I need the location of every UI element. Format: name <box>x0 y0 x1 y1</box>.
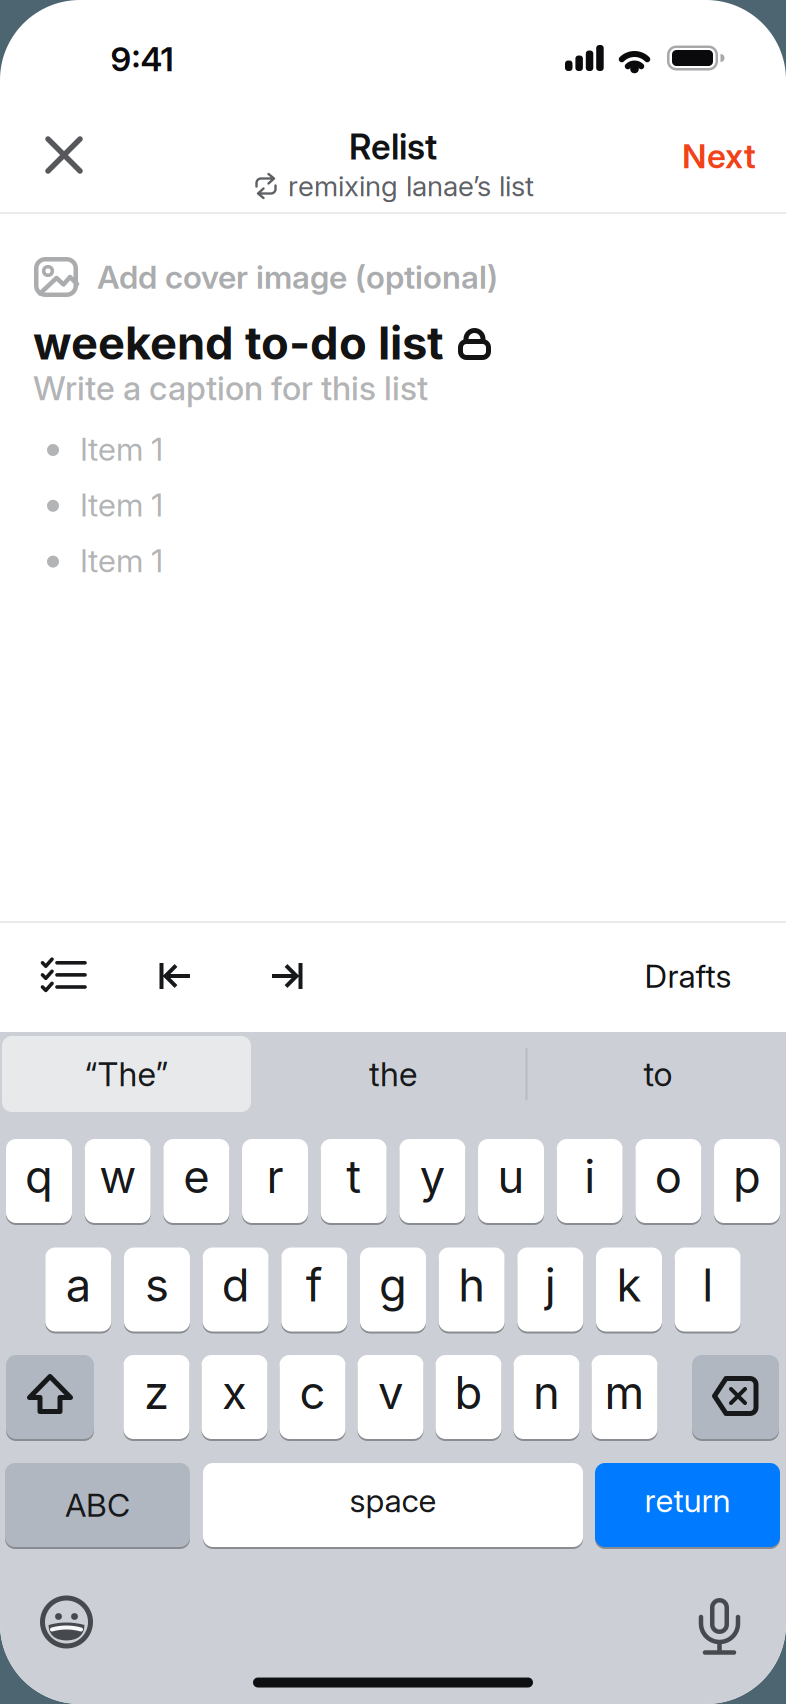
button[interactable]: b <box>435 1354 501 1440</box>
button[interactable]: z <box>123 1354 189 1440</box>
staticText: Item 1 <box>80 430 163 468</box>
staticText: x <box>222 1366 247 1419</box>
button[interactable]: s <box>124 1246 190 1332</box>
button[interactable]: “The” <box>2 1036 251 1112</box>
staticText: c <box>299 1366 325 1419</box>
button[interactable]: to <box>558 1036 758 1112</box>
staticText: the <box>369 1054 417 1094</box>
staticText: n <box>533 1366 560 1419</box>
button[interactable]: q <box>6 1138 72 1224</box>
button[interactable]: Drafts <box>644 957 731 995</box>
staticText: 9:41 <box>110 39 173 79</box>
button[interactable]: Shift <box>6 1354 94 1440</box>
button[interactable]: x <box>201 1354 267 1440</box>
staticText: p <box>733 1150 761 1203</box>
button[interactable]: Add cover image <box>34 257 498 297</box>
staticText: remixing lanae’s list <box>288 169 534 202</box>
button[interactable]: ABC <box>5 1462 190 1548</box>
staticText: Next <box>682 136 756 176</box>
button[interactable]: k <box>596 1246 662 1332</box>
button[interactable]: c <box>279 1354 345 1440</box>
staticText: Add cover image (optional) <box>97 258 498 296</box>
staticText: Write a caption for this list <box>33 368 428 408</box>
staticText: u <box>497 1150 524 1203</box>
button[interactable]: l <box>675 1246 741 1332</box>
staticText: f <box>306 1258 323 1312</box>
staticText: Item 1 <box>80 486 163 524</box>
button[interactable]: y <box>399 1138 465 1224</box>
staticText: h <box>458 1258 485 1312</box>
button[interactable]: space <box>203 1462 583 1548</box>
button[interactable]: Checklist <box>41 956 87 993</box>
button[interactable]: u <box>478 1138 544 1224</box>
button[interactable]: Emoji <box>39 1595 93 1649</box>
staticText: i <box>584 1150 595 1203</box>
staticText: “The” <box>84 1054 168 1094</box>
staticText: s <box>145 1258 169 1312</box>
staticText: to <box>643 1054 672 1094</box>
staticText: weekend to-do list <box>33 316 444 370</box>
button[interactable]: w <box>85 1138 151 1224</box>
button[interactable]: r <box>242 1138 308 1224</box>
button[interactable]: i <box>557 1138 623 1224</box>
staticText: Item 1 <box>80 542 163 579</box>
staticText: y <box>420 1150 445 1203</box>
button[interactable]: d <box>203 1246 269 1332</box>
button[interactable]: Dictate <box>697 1593 741 1655</box>
staticText: return <box>644 1482 730 1519</box>
staticText: w <box>99 1150 136 1203</box>
staticText: Drafts <box>644 957 731 995</box>
staticText: d <box>222 1258 250 1312</box>
button[interactable]: g <box>360 1246 426 1332</box>
staticText: z <box>144 1366 169 1419</box>
staticText: l <box>702 1258 713 1312</box>
button[interactable]: e <box>163 1138 229 1224</box>
button[interactable]: Move to end <box>268 961 302 991</box>
button[interactable]: Delete <box>692 1354 779 1440</box>
button[interactable]: p <box>714 1138 780 1224</box>
button[interactable]: n <box>513 1354 579 1440</box>
staticText: j <box>545 1258 556 1312</box>
button[interactable]: Next <box>682 136 756 176</box>
staticText: r <box>266 1150 283 1203</box>
staticText: t <box>346 1150 361 1203</box>
staticText: ABC <box>65 1486 130 1524</box>
button[interactable]: o <box>635 1138 701 1224</box>
button[interactable]: j <box>517 1246 583 1332</box>
button[interactable]: the <box>293 1036 493 1112</box>
staticText: k <box>616 1258 641 1312</box>
staticText: v <box>378 1366 403 1419</box>
button[interactable]: t <box>321 1138 387 1224</box>
staticText: b <box>454 1366 482 1419</box>
button[interactable]: v <box>357 1354 423 1440</box>
staticText: m <box>604 1366 644 1419</box>
button[interactable]: Close <box>34 125 94 185</box>
button[interactable]: Move to start <box>159 961 193 991</box>
staticText: q <box>25 1150 53 1203</box>
button[interactable]: return <box>595 1462 780 1548</box>
button[interactable]: a <box>45 1246 111 1332</box>
staticText: e <box>183 1150 209 1203</box>
staticText: o <box>655 1150 682 1203</box>
staticText: a <box>66 1258 91 1312</box>
staticText: g <box>379 1258 407 1312</box>
staticText: Relist <box>349 127 437 167</box>
staticText: space <box>349 1482 436 1519</box>
button[interactable]: f <box>281 1246 347 1332</box>
button[interactable]: m <box>591 1354 657 1440</box>
button[interactable]: h <box>439 1246 505 1332</box>
